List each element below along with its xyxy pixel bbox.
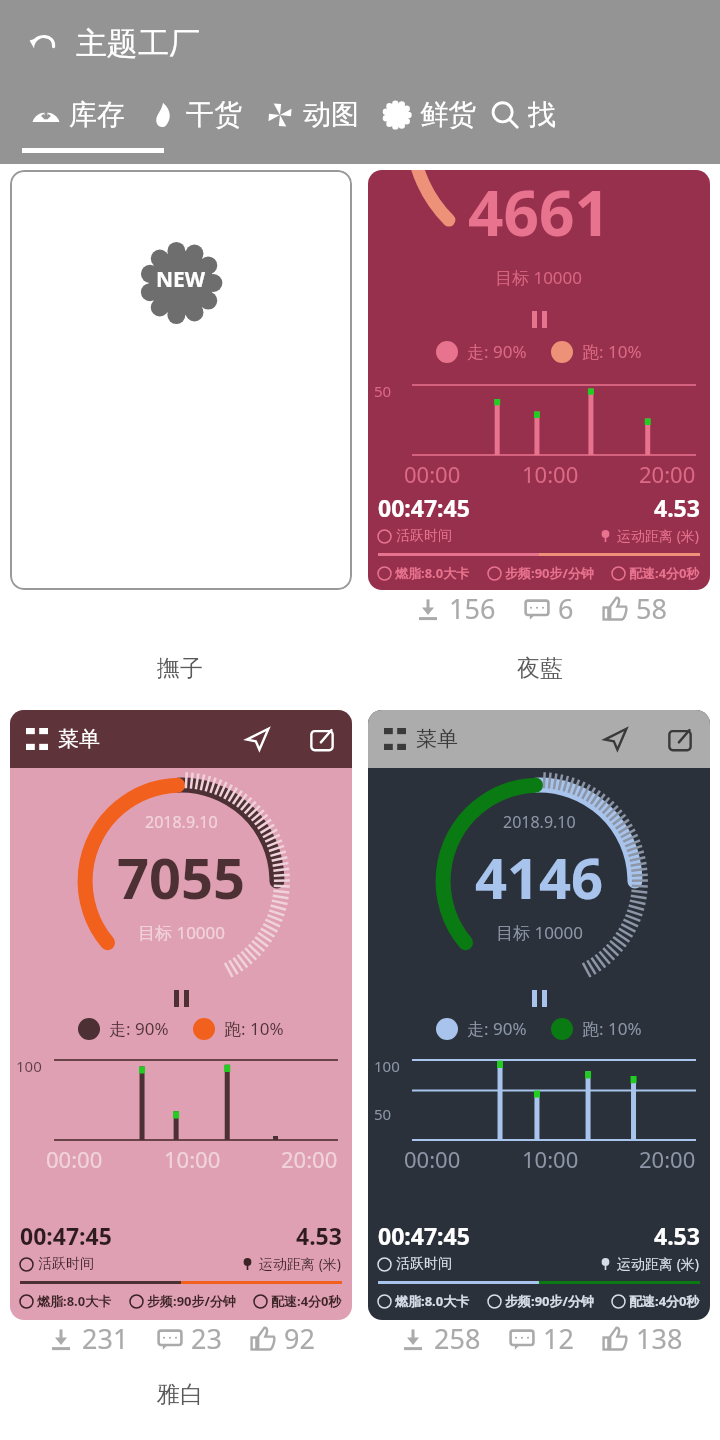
staticText: 找 (528, 97, 556, 132)
staticText: 主题工厂 (76, 24, 200, 63)
staticText: 4.53 (296, 1220, 342, 1251)
staticText: NEW (156, 265, 206, 294)
staticText: 2018.9.10 (503, 811, 576, 833)
staticText: 运动距离 (米) (617, 1254, 700, 1273)
button[interactable]: Back (22, 21, 66, 65)
staticText: 跑: 10% (582, 340, 642, 363)
button[interactable]: 156 (413, 590, 496, 627)
staticText: 20:00 (639, 1144, 696, 1174)
staticText: 00:00 (46, 1144, 103, 1174)
button[interactable]: 菜单 (10, 710, 352, 1320)
button[interactable]: Navigate (600, 724, 630, 754)
button[interactable]: 动图 (264, 97, 359, 132)
staticText: 20:00 (639, 459, 696, 489)
staticText: 00:47:45 (20, 1220, 112, 1251)
staticText: 4146 (475, 839, 604, 915)
staticText: 6 (558, 590, 574, 627)
staticText: 燃脂:8.0大卡 (37, 1292, 112, 1310)
staticText: 跑: 10% (582, 1017, 642, 1040)
staticText: 目标 10000 (138, 921, 226, 944)
staticText: 00:47:45 (378, 492, 470, 523)
button[interactable]: 58 (600, 590, 667, 627)
staticText: 00:00 (404, 459, 461, 489)
button[interactable]: 92 (248, 1320, 315, 1357)
button[interactable]: 231 (46, 1320, 129, 1357)
staticText: 库存 (69, 97, 125, 132)
staticText: 走: 90% (467, 340, 527, 363)
button[interactable]: 鲜货 (381, 97, 476, 132)
staticText: 100 (16, 1056, 42, 1076)
button[interactable]: 258 (398, 1320, 481, 1357)
staticText: 夜藍 (517, 654, 563, 683)
staticText: 4661 (468, 170, 610, 254)
staticText: 4.53 (654, 1220, 700, 1251)
staticText: 走: 90% (109, 1017, 169, 1040)
staticText: 7055 (117, 839, 246, 915)
button[interactable]: 找 (488, 97, 556, 132)
button[interactable]: NEW (10, 170, 352, 590)
button[interactable]: 23 (155, 1320, 222, 1357)
button[interactable]: 干货 (147, 97, 242, 132)
button[interactable]: Navigate (242, 724, 272, 754)
staticText: 活跃时间 (396, 1255, 452, 1273)
staticText: 跑: 10% (224, 1017, 284, 1040)
button[interactable]: Share (308, 725, 336, 753)
staticText: 92 (284, 1320, 315, 1357)
staticText: 燃脂:8.0大卡 (395, 1292, 470, 1310)
staticText: 50 (374, 1104, 392, 1124)
staticText: 菜单 (58, 726, 100, 752)
staticText: 干货 (186, 97, 242, 132)
button[interactable]: 菜单 (368, 710, 710, 1320)
staticText: 138 (636, 1320, 683, 1357)
staticText: 23 (191, 1320, 222, 1357)
button[interactable]: 4661 (368, 170, 710, 590)
staticText: 10:00 (522, 1144, 579, 1174)
staticText: 鲜货 (420, 97, 476, 132)
button[interactable]: Share (666, 725, 694, 753)
staticText: 运动距离 (米) (259, 1254, 342, 1273)
staticText: 雅白 (157, 1380, 203, 1409)
staticText: 156 (449, 590, 496, 627)
button[interactable]: 12 (507, 1320, 574, 1357)
staticText: 2018.9.10 (145, 811, 218, 833)
staticText: 50 (374, 381, 392, 401)
staticText: 配速:4分0秒 (629, 1292, 700, 1310)
staticText: 燃脂:8.0大卡 (395, 564, 470, 582)
staticText: 活跃时间 (38, 1255, 94, 1273)
staticText: 目标 10000 (496, 921, 584, 944)
staticText: 运动距离 (米) (617, 526, 700, 545)
staticText: 10:00 (522, 459, 579, 489)
button[interactable]: 6 (522, 590, 574, 627)
staticText: 231 (82, 1320, 129, 1357)
staticText: 12 (543, 1320, 574, 1357)
staticText: 活跃时间 (396, 527, 452, 545)
staticText: 步频:90步/分钟 (505, 1292, 594, 1310)
staticText: 100 (374, 1056, 400, 1076)
staticText: 动图 (303, 97, 359, 132)
staticText: 00:00 (404, 1144, 461, 1174)
staticText: 58 (636, 590, 667, 627)
staticText: 菜单 (416, 726, 458, 752)
staticText: 配速:4分0秒 (629, 564, 700, 582)
staticText: 4.53 (654, 492, 700, 523)
button[interactable]: 138 (600, 1320, 683, 1357)
staticText: 20:00 (281, 1144, 338, 1174)
staticText: 00:47:45 (378, 1220, 470, 1251)
staticText: 10:00 (164, 1144, 221, 1174)
staticText: 258 (434, 1320, 481, 1357)
staticText: 配速:4分0秒 (271, 1292, 342, 1310)
staticText: 步频:90步/分钟 (147, 1292, 236, 1310)
button[interactable]: 库存 (30, 97, 125, 132)
staticText: 目标 10000 (495, 266, 583, 289)
staticText: 撫子 (157, 654, 203, 683)
staticText: 走: 90% (467, 1017, 527, 1040)
staticText: 步频:90步/分钟 (505, 564, 594, 582)
